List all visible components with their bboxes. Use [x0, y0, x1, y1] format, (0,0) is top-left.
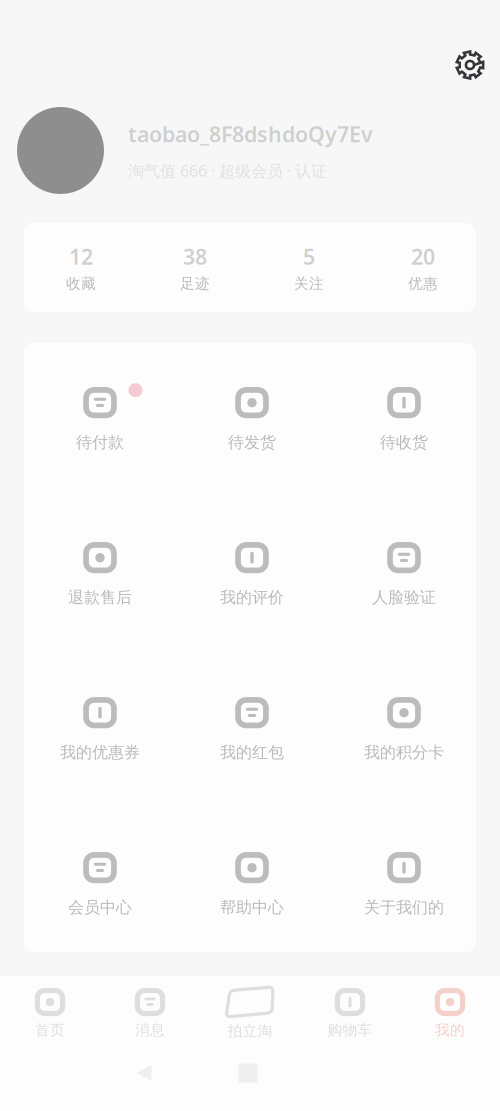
staticText: 38 [183, 242, 207, 271]
staticText: 收藏 [66, 275, 96, 293]
staticText: 我的红包 [220, 743, 284, 762]
staticText: 我的积分卡 [364, 743, 444, 762]
staticText: 消息 [135, 1021, 165, 1039]
button[interactable]: 退款售后 [24, 497, 176, 652]
button[interactable]: Home [224, 1058, 272, 1088]
staticText: 我的 [435, 1021, 465, 1039]
button[interactable]: 12 [24, 223, 138, 311]
staticText: 拍立淘 [227, 1022, 272, 1040]
button[interactable]: 消息 [100, 987, 200, 1040]
button[interactable]: 待发货 [176, 342, 328, 497]
button[interactable]: 我的红包 [176, 652, 328, 807]
staticText: 待发货 [228, 433, 276, 452]
button[interactable]: 拍立淘 [200, 987, 300, 1040]
button[interactable]: 我的 [400, 987, 500, 1040]
staticText: 待付款 [76, 433, 124, 452]
staticText: 退款售后 [68, 588, 132, 607]
button[interactable]: 首页 [0, 987, 100, 1040]
staticText: 关于我们的 [364, 898, 444, 917]
staticText: 关注 [294, 275, 324, 293]
button[interactable]: 会员中心 [24, 807, 176, 962]
staticText: taobao_8F8dshdoQy7Ev [128, 120, 373, 148]
staticText: 帮助中心 [220, 898, 284, 917]
button[interactable]: 20 [366, 223, 480, 311]
button[interactable]: Back [120, 1058, 168, 1088]
staticText: 我的评价 [220, 588, 284, 607]
staticText: 待收货 [380, 433, 428, 452]
button[interactable]: 人脸验证 [328, 497, 480, 652]
staticText: 人脸验证 [372, 588, 436, 607]
button[interactable]: 关于我们的 [328, 807, 480, 962]
button[interactable]: Settings [445, 40, 495, 90]
staticText: 5 [303, 242, 315, 271]
staticText: 20 [411, 242, 435, 271]
button[interactable]: 购物车 [300, 987, 400, 1040]
staticText: 会员中心 [68, 898, 132, 917]
staticText: 12 [69, 242, 93, 271]
button[interactable]: 38 [138, 223, 252, 311]
staticText: 足迹 [180, 275, 210, 293]
button[interactable]: 我的评价 [176, 497, 328, 652]
staticText: 首页 [35, 1021, 65, 1039]
button[interactable]: 我的优惠券 [24, 652, 176, 807]
button[interactable]: 5 [252, 223, 366, 311]
staticText: 购物车 [327, 1021, 372, 1039]
button[interactable]: 待付款 [24, 342, 176, 497]
button[interactable]: 我的积分卡 [328, 652, 480, 807]
staticText: 淘气值 666 · 超级会员 · 认证 [128, 160, 327, 181]
staticText: 我的优惠券 [60, 743, 140, 762]
button[interactable]: 待收货 [328, 342, 480, 497]
staticText: 优惠 [408, 275, 438, 293]
button[interactable]: 帮助中心 [176, 807, 328, 962]
